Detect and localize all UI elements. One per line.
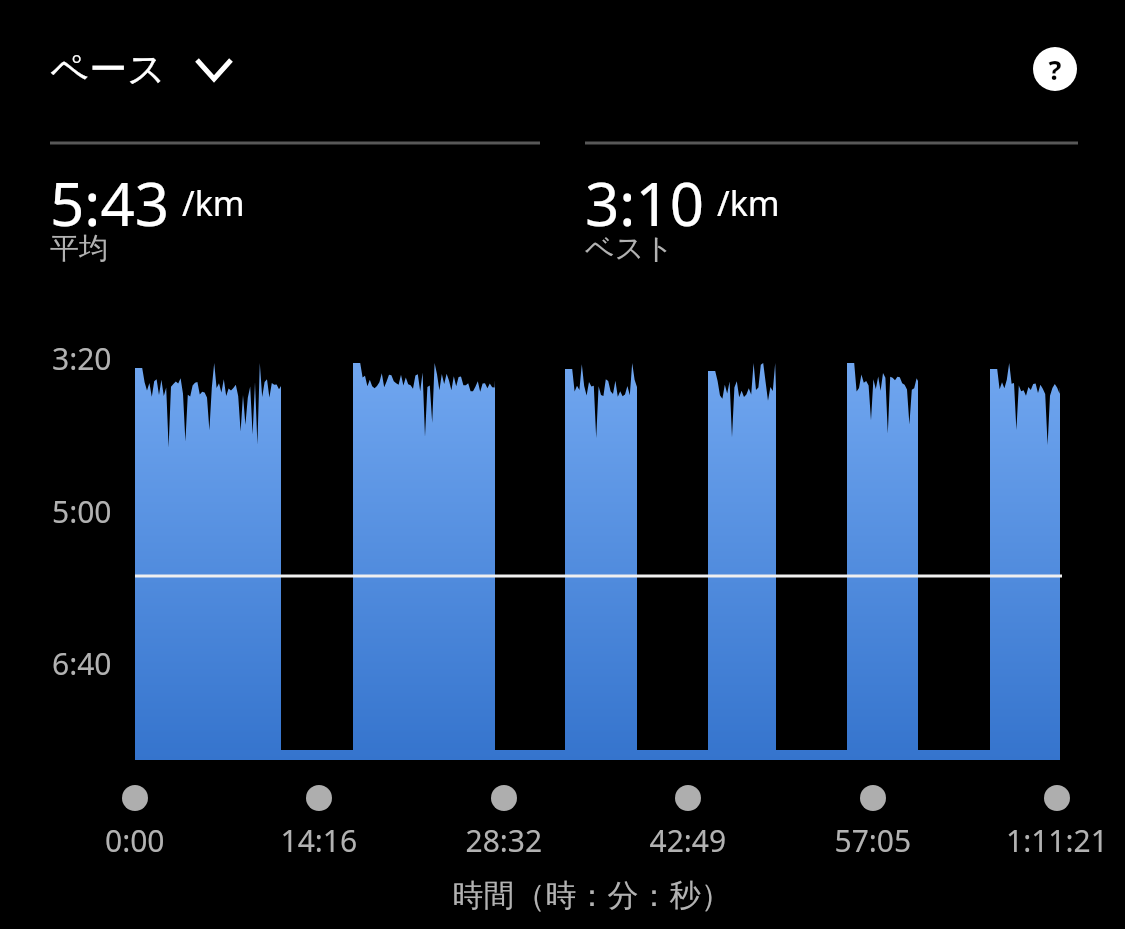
button[interactable]: ペースのグラフ bbox=[135, 340, 1065, 770]
button[interactable]: ヘルプ bbox=[1011, 25, 1099, 113]
button[interactable]: ペース – グラフの指標を変更 bbox=[40, 36, 250, 102]
